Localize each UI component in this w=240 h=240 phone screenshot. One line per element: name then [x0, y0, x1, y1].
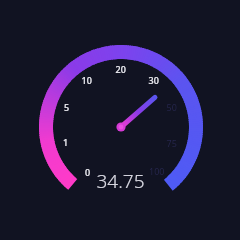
- button[interactable]: Speedometer gauge showing 34.75: [0, 0, 240, 240]
